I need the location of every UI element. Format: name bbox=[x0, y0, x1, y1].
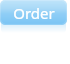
staticText: Order bbox=[13, 3, 55, 23]
button[interactable]: Order bbox=[0, 0, 67, 25]
